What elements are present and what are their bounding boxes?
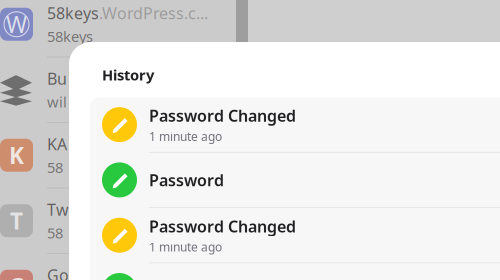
staticText: Password Changed (149, 216, 296, 237)
staticText: 58keys (47, 2, 99, 24)
button[interactable]: Password (90, 153, 500, 207)
staticText: W (6, 9, 27, 39)
button[interactable]: Password Changed (90, 208, 500, 262)
staticText: History (102, 65, 154, 84)
staticText: 58keys (47, 27, 93, 46)
staticText: KA (47, 133, 67, 155)
button[interactable]: Password Changed (90, 97, 500, 152)
staticText: 1 minute ago (149, 239, 222, 255)
staticText: Password (149, 169, 224, 190)
staticText: Bu (47, 68, 67, 89)
staticText: .WordPress.c... (99, 2, 208, 24)
staticText: K (9, 140, 24, 170)
staticText: 58 (47, 223, 63, 243)
staticText: Tw (47, 199, 69, 220)
staticText: 58 (47, 158, 63, 177)
staticText: Go (47, 264, 69, 280)
staticText: Password Changed (149, 105, 296, 126)
button[interactable]: Password (90, 263, 500, 280)
staticText: 1 minute ago (149, 128, 222, 144)
staticText: G (8, 271, 24, 280)
staticText: T (10, 206, 23, 236)
staticText: wil (47, 92, 67, 112)
